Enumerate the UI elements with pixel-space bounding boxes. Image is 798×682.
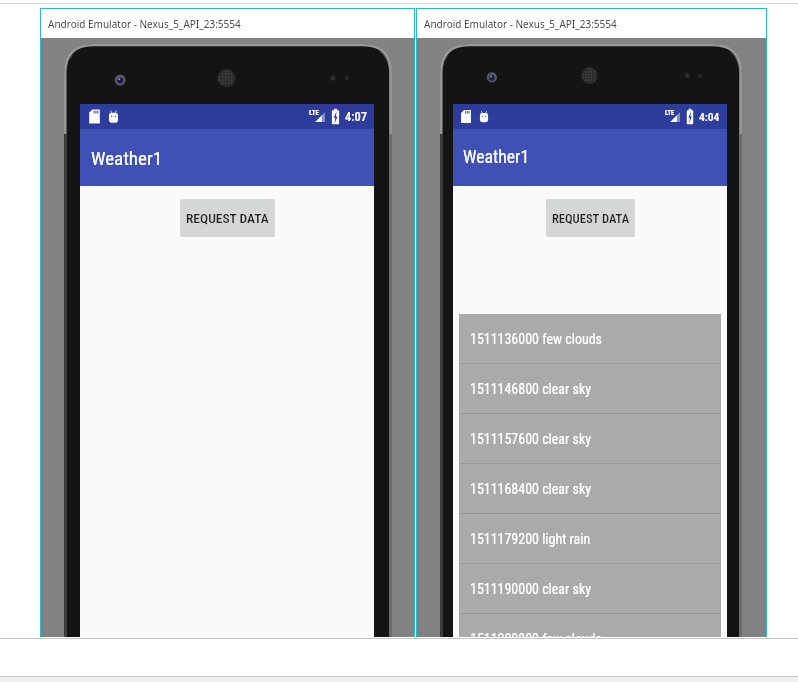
other: System update [108,104,119,129]
staticText: Weather1 [91,147,163,169]
button[interactable]: 1511200800 few clouds [459,614,721,637]
other: Battery charging [686,104,694,129]
staticText: LTE [309,109,319,117]
button[interactable]: REQUEST DATA [180,199,275,237]
staticText: Android Emulator - Nexus_5_API_23:5554 [48,17,241,31]
other: SD card [88,104,101,129]
button[interactable]: 1511136000 few clouds [459,314,721,364]
button[interactable]: 1511157600 clear sky [459,414,721,464]
staticText: 1511136000 few clouds [470,331,602,347]
staticText: REQUEST DATA [186,210,269,226]
staticText: 1511157600 clear sky [470,431,592,447]
staticText: 1511190000 clear sky [470,581,592,597]
staticText: Weather1 [463,147,530,168]
button[interactable]: 1511168400 clear sky [459,464,721,514]
button[interactable]: 1511190000 clear sky [459,564,721,614]
staticText: Android Emulator - Nexus_5_API_23:5554 [424,17,617,31]
other: Battery charging [331,104,340,129]
staticText: 1511200800 few clouds [470,631,602,637]
other: LTE signal strength [309,104,325,129]
other: LTE signal strength [665,104,680,129]
staticText: 1511179200 light rain [470,531,591,547]
button[interactable]: REQUEST DATA [546,199,635,237]
staticText: 4:07 [345,109,367,124]
staticText: 1511168400 clear sky [470,481,592,497]
button[interactable]: 1511146800 clear sky [459,364,721,414]
button[interactable]: 1511179200 light rain [459,514,721,564]
other: System update [479,104,489,129]
staticText: REQUEST DATA [552,211,630,226]
other: SD card [460,104,472,129]
staticText: 4:04 [699,110,720,124]
staticText: 1511146800 clear sky [470,381,592,397]
staticText: LTE [665,109,675,117]
